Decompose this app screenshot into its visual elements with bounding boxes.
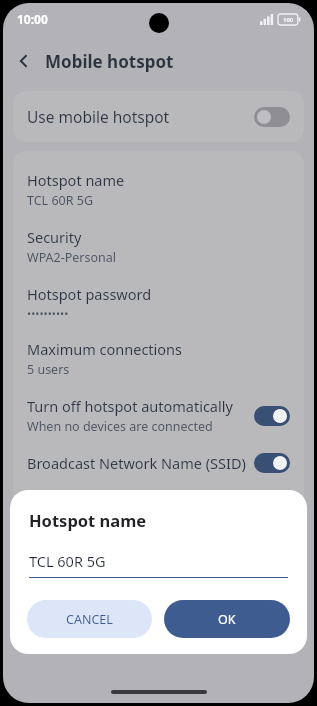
staticText: Security (27, 227, 82, 247)
button[interactable]: Back (3, 39, 45, 83)
staticText: •••••••••• (27, 306, 69, 321)
staticText: OK (218, 611, 236, 628)
staticText: Use mobile hotspot (27, 106, 170, 127)
staticText: TCL 60R 5G (27, 192, 93, 209)
button[interactable]: Broadcast Network Name (SSID) (13, 444, 304, 482)
staticText: TCL 60R 5G (29, 551, 106, 571)
button[interactable]: OK (164, 600, 290, 638)
staticText: CANCEL (66, 611, 113, 628)
button[interactable]: Maximum connections (13, 330, 304, 387)
staticText: 10:00 (17, 11, 48, 27)
staticText: Hotspot name (29, 509, 147, 531)
button[interactable]: Hotspot password (13, 275, 304, 330)
button[interactable]: TCL 60R 5G (29, 551, 288, 571)
button[interactable]: CANCEL (27, 600, 152, 638)
staticText: Mobile hotspot (45, 50, 174, 73)
staticText: WPA2-Personal (27, 249, 117, 266)
staticText: Turn off hotspot automatically (27, 396, 233, 416)
staticText: Hotspot password (27, 284, 152, 304)
staticText: When no devices are connected (27, 418, 213, 435)
button[interactable]: Hotspot name (13, 161, 304, 218)
staticText: If you switch the Broadcast Network Name… (27, 496, 240, 529)
button[interactable]: Toggle off (254, 107, 290, 127)
staticText: 5 users (27, 361, 70, 378)
button[interactable]: Use mobile hotspot (13, 91, 304, 142)
button[interactable]: Toggle on (254, 453, 290, 473)
staticText: Hotspot name (27, 170, 125, 190)
button[interactable]: Security (13, 218, 304, 275)
staticText: Broadcast Network Name (SSID) (27, 453, 246, 473)
button[interactable]: Toggle on (254, 406, 290, 426)
button[interactable]: Turn off hotspot automatically (13, 387, 304, 444)
staticText: 100 (283, 16, 294, 24)
staticText: Maximum connections (27, 339, 182, 359)
